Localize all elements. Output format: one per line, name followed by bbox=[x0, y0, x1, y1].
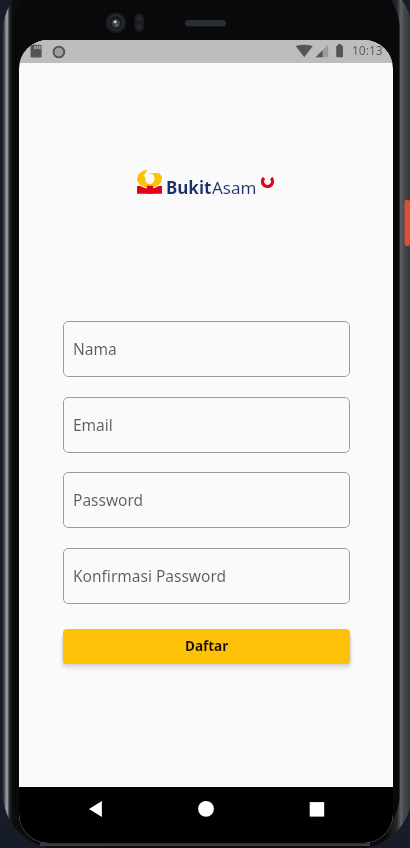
staticText: Bukit bbox=[166, 176, 212, 199]
button[interactable]: Email bbox=[63, 397, 350, 453]
button[interactable]: Daftar bbox=[63, 629, 350, 664]
staticText: Konfirmasi Password bbox=[73, 565, 227, 586]
staticText: Daftar bbox=[185, 637, 229, 655]
button[interactable]: Home bbox=[190, 793, 222, 825]
button[interactable]: Konfirmasi Password bbox=[63, 548, 350, 604]
button[interactable]: Back bbox=[77, 793, 109, 825]
button[interactable]: Password bbox=[63, 472, 350, 528]
staticText: 10:13 bbox=[352, 42, 383, 58]
staticText: Password bbox=[73, 489, 144, 510]
staticText: Asam bbox=[212, 176, 257, 199]
staticText: Email bbox=[73, 414, 113, 435]
button[interactable]: Recents bbox=[301, 793, 333, 825]
staticText: Nama bbox=[73, 338, 117, 359]
button[interactable]: Nama bbox=[63, 321, 350, 377]
